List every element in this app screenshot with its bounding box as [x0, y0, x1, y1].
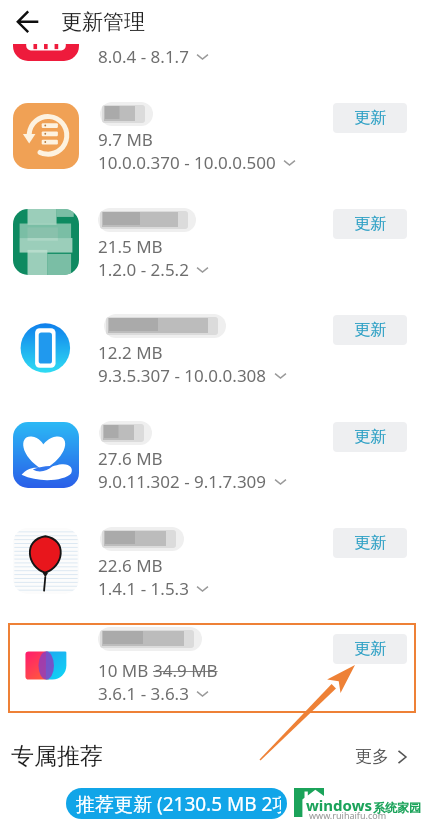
staticText: 更新 [354, 533, 386, 553]
staticText: 更多 [355, 746, 389, 767]
button[interactable]: 专属推荐 [11, 742, 103, 771]
staticText: 27.6 MB [98, 447, 163, 470]
staticText: 1.4.1 - 1.5.3 [98, 577, 189, 600]
staticText: 更新 [354, 320, 386, 340]
staticText: 更新 [354, 639, 386, 659]
staticText: 10 MB [98, 659, 153, 682]
button[interactable]: 更新 [333, 422, 407, 452]
staticText: 21.5 MB [98, 235, 163, 258]
staticText: 更新 [354, 427, 386, 447]
staticText: 更新 [354, 108, 386, 128]
staticText: 22.6 MB [98, 554, 163, 577]
button[interactable]: 更新 [333, 209, 407, 239]
button[interactable]: 更多 [355, 746, 409, 767]
button[interactable] [0, 297, 427, 403]
staticText: 系统家园 [373, 800, 421, 815]
staticText: 9.7 MB [98, 128, 153, 151]
staticText: 更新 [354, 214, 386, 234]
button[interactable] [0, 510, 427, 616]
staticText: 34.9 MB [153, 659, 218, 682]
staticText: 8.0.4 - 8.1.7 [98, 45, 189, 68]
button[interactable] [0, 404, 427, 510]
button[interactable]: 更新 [333, 315, 407, 345]
staticText: 专属推荐 [11, 742, 103, 771]
staticText: 9.0.11.302 - 9.1.7.309 [98, 470, 267, 493]
button[interactable]: 更新 [333, 103, 407, 133]
staticText: 推荐更新 (2130.5 MB 2项) [76, 791, 281, 817]
button[interactable] [0, 85, 427, 191]
staticText: 12.2 MB [98, 341, 163, 364]
staticText: 3.6.1 - 3.6.3 [98, 682, 189, 705]
button[interactable] [0, 191, 427, 297]
staticText: 10.0.0.370 - 10.0.0.500 [98, 151, 276, 174]
staticText: www.ruihaifu.com [309, 809, 387, 821]
button[interactable]: 推荐更新 (2130.5 MB 2项) [66, 788, 287, 819]
button[interactable]: Back [6, 0, 50, 44]
button[interactable] [8, 623, 416, 713]
button[interactable]: 更新 [333, 634, 407, 664]
staticText: 更新管理 [61, 9, 145, 35]
staticText: windows [306, 795, 373, 815]
button[interactable]: 更新 [333, 528, 407, 558]
staticText: 1.2.0 - 2.5.2 [98, 258, 189, 281]
staticText: 9.3.5.307 - 10.0.0.308 [98, 364, 267, 387]
